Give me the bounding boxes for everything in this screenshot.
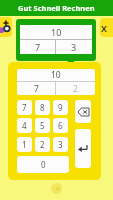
button[interactable]: Back [51, 183, 62, 194]
button[interactable]: 1 [17, 137, 32, 152]
button[interactable]: Backspace [75, 100, 91, 123]
button[interactable]: 3 [53, 137, 68, 152]
staticText: 0 [41, 159, 46, 170]
staticText: 10 [51, 26, 62, 38]
staticText: 9 [58, 102, 63, 113]
staticText: 3 [58, 139, 63, 150]
staticText: 10 [51, 69, 61, 81]
staticText: 7 [22, 102, 27, 113]
button[interactable]: 7 [17, 100, 32, 115]
button[interactable]: 5 [35, 118, 50, 133]
button[interactable]: 6 [53, 118, 68, 133]
staticText: X [101, 22, 108, 34]
button[interactable]: 2 [35, 137, 50, 152]
button[interactable]: 9 [53, 100, 68, 115]
staticText: 3 [71, 41, 77, 53]
staticText: 2 [40, 139, 45, 150]
staticText: 1 [22, 139, 27, 150]
button[interactable]: 8 [35, 100, 50, 115]
button[interactable]: Enter [75, 129, 91, 168]
staticText: 7 [34, 83, 39, 95]
staticText: 5 [40, 120, 45, 131]
staticText: 7 [35, 41, 41, 53]
button[interactable]: Close [100, 18, 113, 37]
button[interactable]: 4 [17, 118, 32, 133]
staticText: 8 [40, 102, 45, 113]
button[interactable]: 0 [17, 156, 69, 173]
button[interactable]: Offers [0, 17, 12, 37]
staticText: 2 [73, 83, 78, 95]
staticText: 6 [58, 120, 63, 131]
staticText: Gut Schnell Rechnen [18, 3, 95, 13]
staticText: 4 [22, 120, 27, 131]
